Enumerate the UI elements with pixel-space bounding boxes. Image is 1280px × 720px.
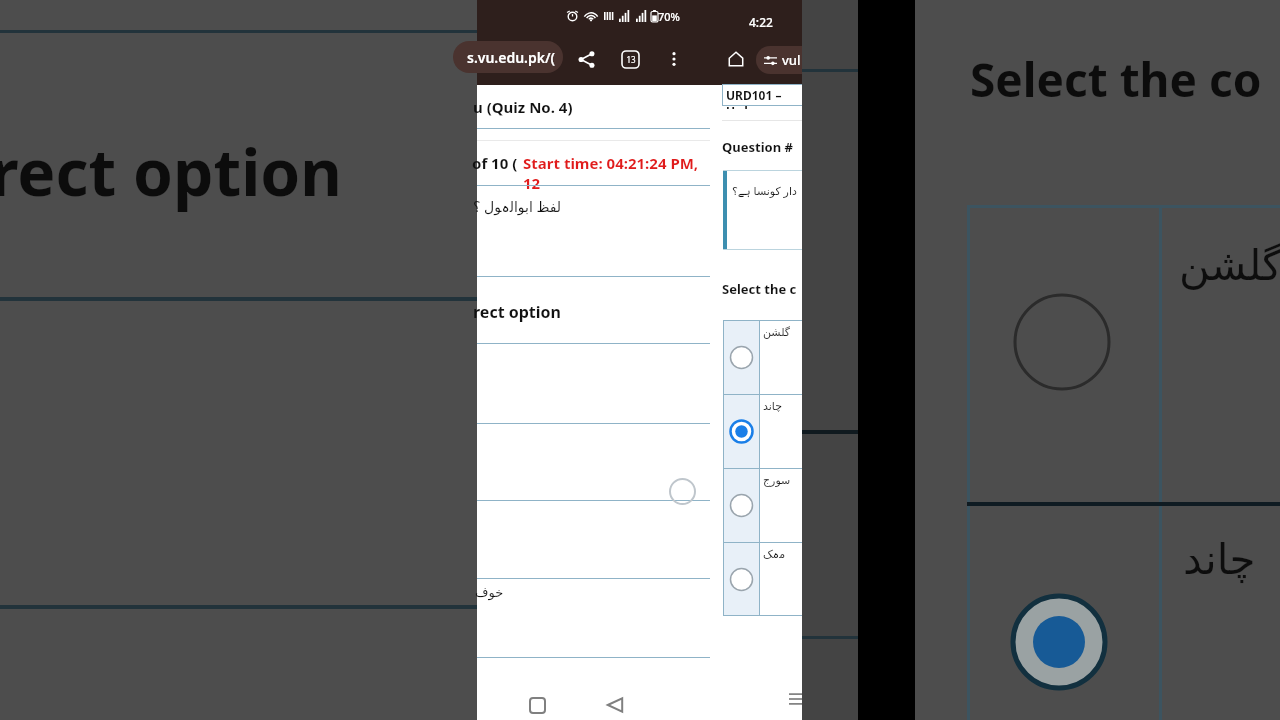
- staticText: سورج: [763, 474, 791, 487]
- staticText: s.vu.edu.pk/(: [467, 48, 556, 67]
- staticText: مہک: [763, 548, 786, 561]
- staticText: vul: [782, 51, 801, 69]
- button[interactable]: مہک: [723, 542, 803, 616]
- button[interactable]: Back: [600, 690, 630, 720]
- staticText: 4:22: [749, 14, 773, 30]
- button[interactable]: Share: [571, 44, 601, 74]
- button[interactable]: سورج: [723, 468, 803, 542]
- button[interactable]: vul: [756, 46, 816, 74]
- staticText: URD101 – Urd: [726, 87, 806, 109]
- staticText: 70%: [658, 9, 680, 24]
- staticText: لفظ ابوالہول ؟: [473, 197, 562, 216]
- button[interactable]: Menu: [782, 685, 810, 713]
- staticText: rect option: [473, 301, 561, 323]
- staticText: چاند: [763, 400, 782, 413]
- staticText: گلشن: [1179, 241, 1280, 290]
- staticText: دار کونسا ہے؟: [732, 183, 797, 198]
- button[interactable]: s.vu.edu.pk/(: [453, 41, 563, 73]
- staticText: rect option: [0, 128, 342, 215]
- button[interactable]: چاند: [723, 394, 803, 468]
- button[interactable]: Home: [722, 45, 750, 73]
- staticText: of 10 (: [472, 153, 518, 173]
- staticText: u (Quiz No. 4): [473, 97, 573, 117]
- staticText: Select the c: [722, 280, 797, 298]
- button[interactable]: Tabs: [615, 44, 645, 74]
- button[interactable]: Recent apps: [522, 690, 552, 720]
- staticText: چاند: [1183, 535, 1256, 584]
- staticText: Start time: 04:21:24 PM, 12: [523, 153, 705, 193]
- staticText: Select the co: [970, 48, 1262, 111]
- staticText: 13: [626, 54, 636, 65]
- staticText: گلشن: [763, 326, 791, 339]
- button[interactable]: گلشن: [723, 320, 803, 394]
- staticText: خوف: [475, 585, 504, 600]
- button[interactable]: More options: [659, 44, 689, 74]
- staticText: Question #: [722, 138, 797, 156]
